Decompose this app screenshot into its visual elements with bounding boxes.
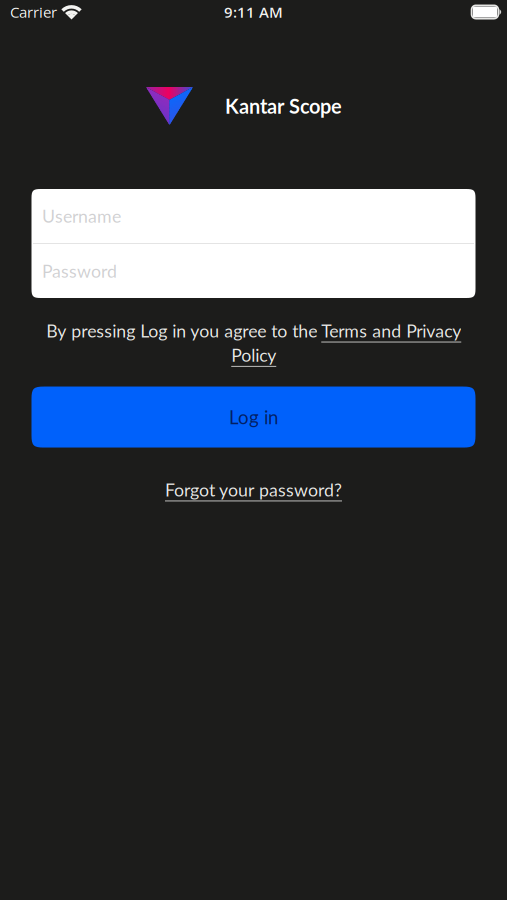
button[interactable]: Password (31, 244, 475, 298)
staticText: Log in (229, 406, 278, 428)
staticText: Username (42, 205, 121, 227)
staticText: Password (42, 260, 117, 282)
staticText: Carrier (10, 2, 57, 22)
button[interactable]: Username (31, 189, 475, 243)
button[interactable]: Forgot your password? (165, 478, 342, 502)
staticText: 9:11 AM (224, 2, 283, 22)
staticText: Kantar Scope (225, 94, 342, 118)
staticText: Forgot your password? (165, 479, 342, 500)
button[interactable]: Log in (31, 387, 475, 448)
staticText: By pressing Log in you agree to the Term… (46, 320, 461, 366)
